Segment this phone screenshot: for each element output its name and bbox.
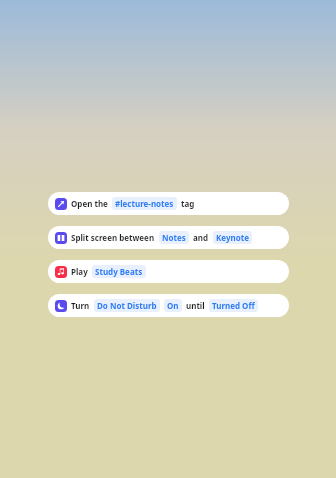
staticText: #lecture-notes	[115, 198, 174, 209]
staticText: Turn	[71, 300, 90, 311]
staticText: Split screen between	[71, 232, 155, 243]
staticText: On	[167, 300, 179, 311]
staticText: until	[186, 300, 205, 311]
staticText: tag	[181, 198, 195, 209]
staticText: Keynote	[216, 232, 249, 243]
staticText: and	[193, 232, 209, 243]
staticText: Do Not Disturb	[97, 300, 157, 311]
staticText: Play	[71, 266, 88, 277]
staticText: Notes	[162, 232, 186, 243]
button[interactable]: Turn	[48, 294, 289, 317]
button[interactable]: Open the	[48, 192, 289, 215]
button[interactable]: Split screen between	[48, 226, 289, 249]
button[interactable]: Play	[48, 260, 289, 283]
staticText: Study Beats	[95, 266, 143, 277]
staticText: Open the	[71, 198, 108, 209]
staticText: Turned Off	[212, 300, 255, 311]
